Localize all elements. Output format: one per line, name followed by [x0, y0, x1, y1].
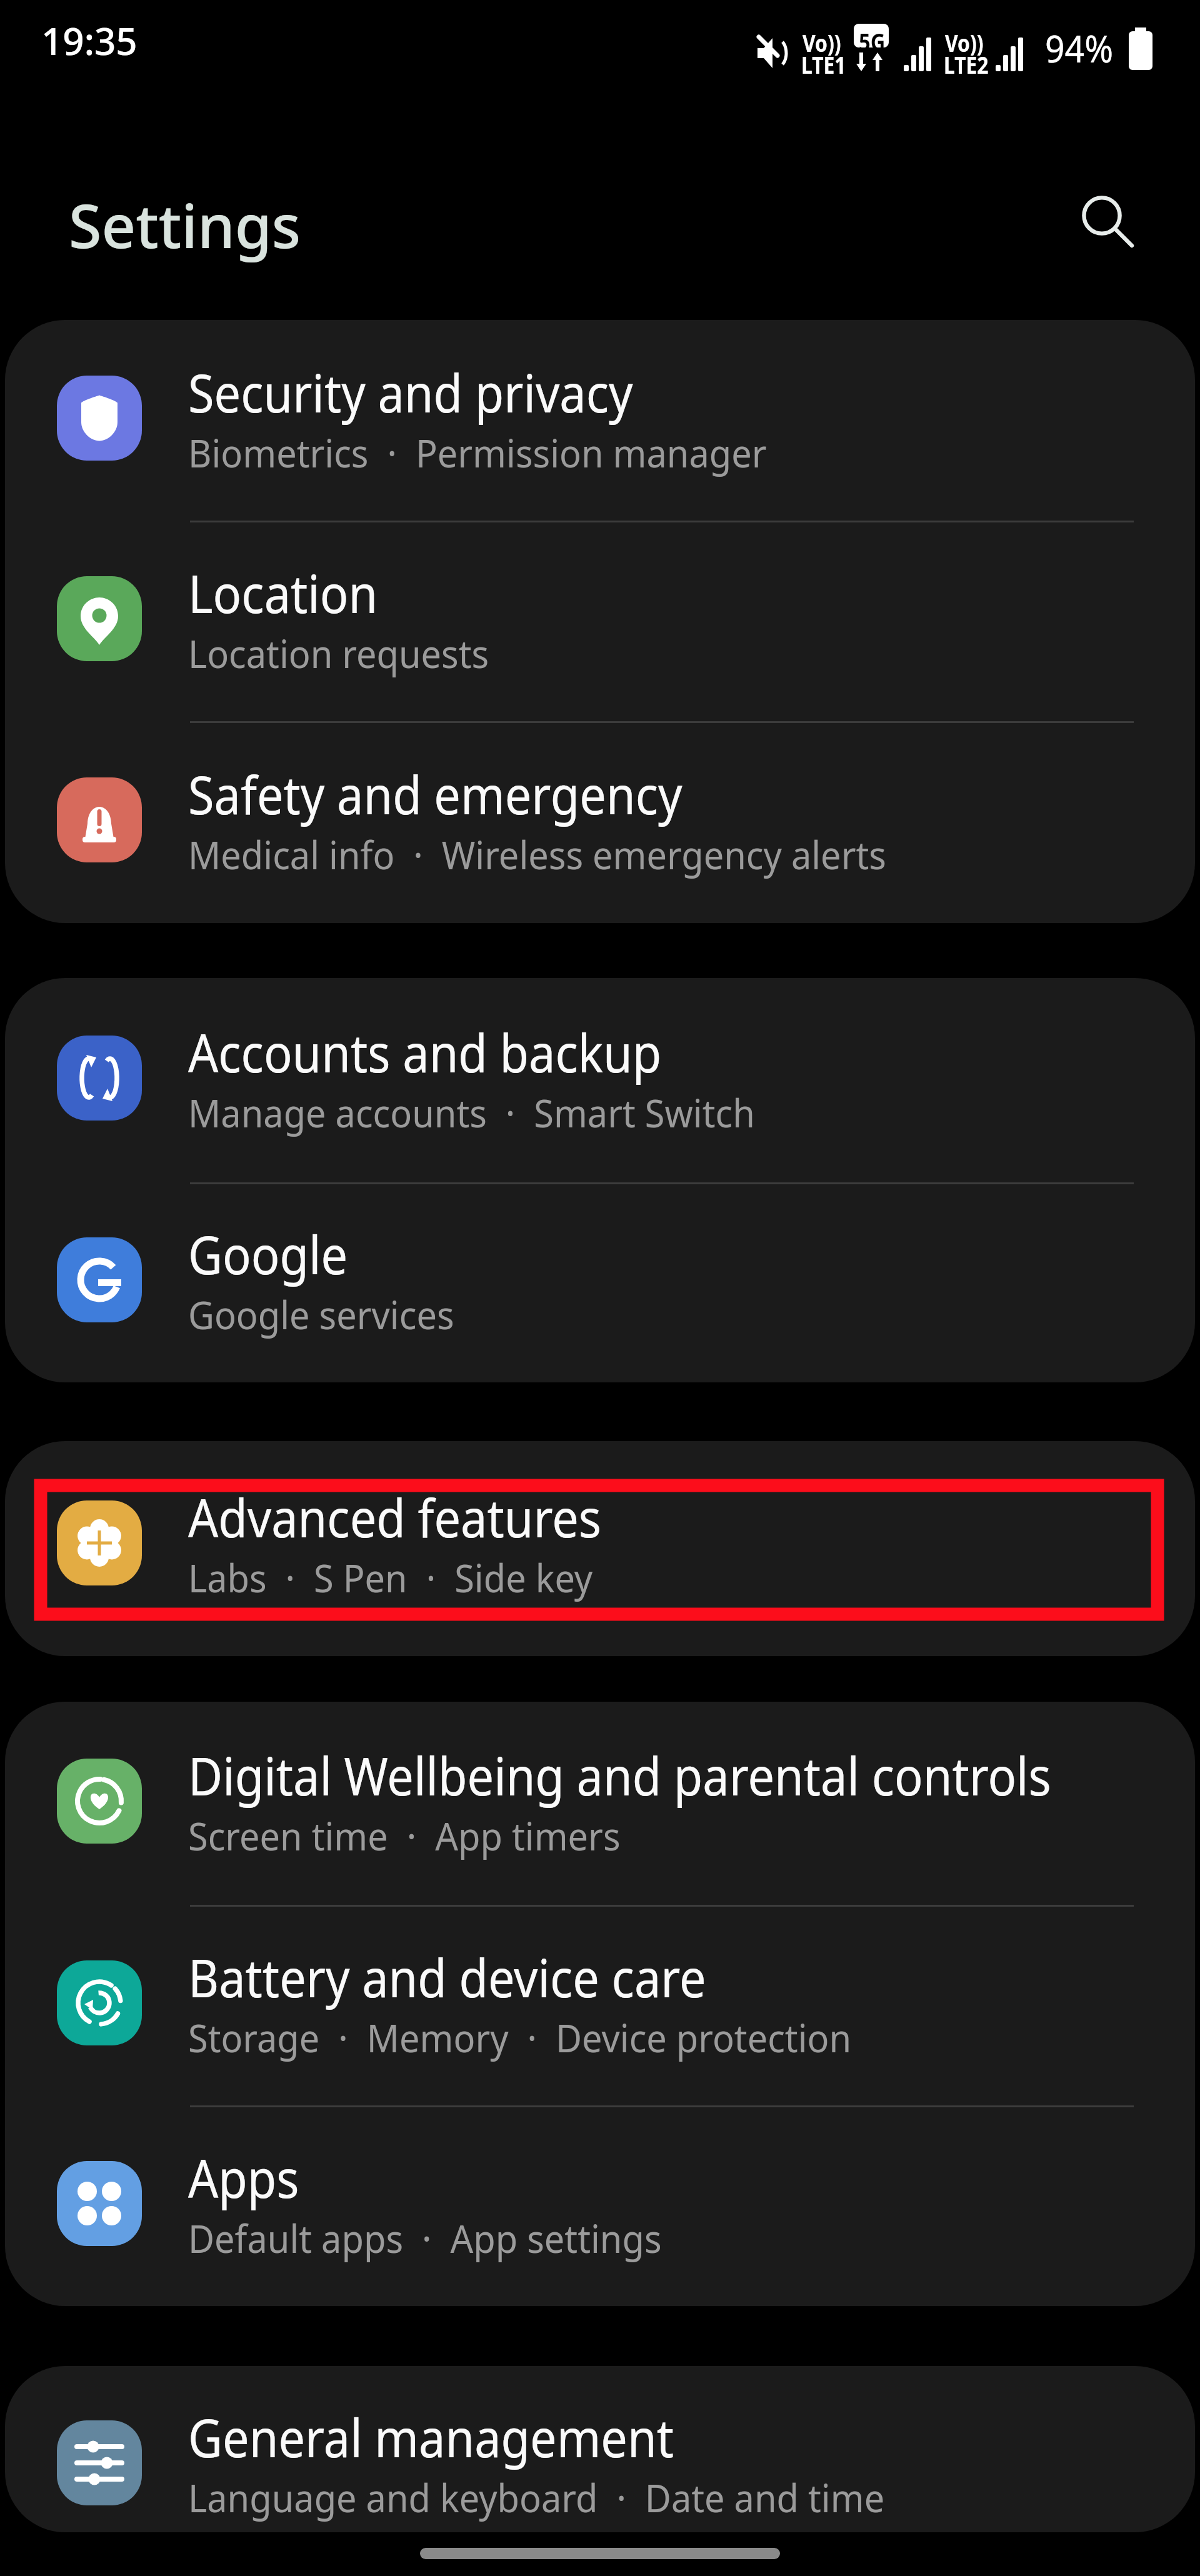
staticText: Vo)) [945, 27, 984, 58]
button[interactable]: Security and privacy [5, 320, 1195, 521]
staticText: Location [188, 557, 378, 628]
staticText: 5G [859, 25, 886, 57]
staticText: Accounts and backup [188, 1016, 662, 1087]
button[interactable]: General management [5, 2366, 1195, 2532]
staticText: Apps [188, 2142, 299, 2213]
button[interactable]: Apps [5, 2105, 1195, 2306]
staticText: Battery and device care [188, 1941, 706, 2012]
staticText: Default apps · App settings [188, 2212, 662, 2264]
button[interactable]: Location [5, 521, 1195, 721]
staticText: Google services [188, 1288, 454, 1340]
button[interactable]: Search [1058, 172, 1146, 259]
staticText: LTE1 [801, 49, 846, 80]
staticText: General management [188, 2401, 674, 2472]
button[interactable]: Advanced features [5, 1441, 1195, 1656]
staticText: LTE2 [944, 49, 989, 80]
staticText: Labs · S Pen · Side key [188, 1551, 593, 1604]
staticText: Vo)) [802, 27, 841, 58]
staticText: 94% [1045, 22, 1113, 74]
staticText: Settings [69, 183, 301, 266]
button[interactable]: Digital Wellbeing and parental controls [5, 1702, 1195, 1905]
staticText: Security and privacy [188, 356, 633, 427]
staticText: Medical info · Wireless emergency alerts [188, 828, 886, 881]
staticText: Storage · Memory · Device protection [188, 2011, 851, 2064]
staticText: Safety and emergency [188, 758, 683, 829]
staticText: Advanced features [188, 1481, 602, 1552]
staticText: Google [188, 1218, 348, 1289]
button[interactable]: Safety and emergency [5, 721, 1195, 923]
staticText: Digital Wellbeing and parental controls [188, 1739, 1052, 1810]
staticText: Screen time · App timers [188, 1809, 621, 1862]
staticText: Biometrics · Permission manager [188, 426, 767, 479]
staticText: 19:35 [41, 15, 137, 66]
button[interactable]: Google [5, 1182, 1195, 1382]
staticText: Manage accounts · Smart Switch [188, 1086, 755, 1139]
staticText: Location requests [188, 627, 489, 679]
button[interactable]: Battery and device care [5, 1905, 1195, 2105]
button[interactable]: Accounts and backup [5, 978, 1195, 1182]
staticText: Language and keyboard · Date and time [188, 2471, 885, 2524]
